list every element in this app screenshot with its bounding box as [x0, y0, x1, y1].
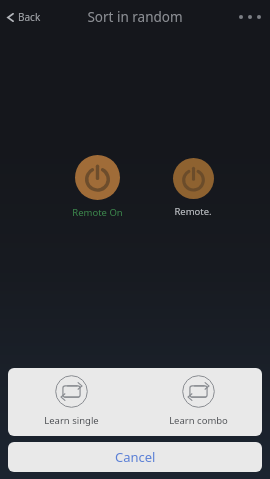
staticText: Remote On: [72, 206, 123, 219]
staticText: Learn combo: [169, 414, 228, 427]
staticText: Back: [18, 10, 41, 24]
staticText: Learn single: [44, 414, 99, 427]
button[interactable]: Cancel: [8, 442, 262, 472]
staticText: Sort in random: [87, 8, 183, 26]
button[interactable]: Learn combo: [135, 368, 262, 427]
button[interactable]: Remote On: [63, 155, 131, 219]
staticText: Cancel: [115, 448, 156, 466]
button[interactable]: Remote.: [159, 158, 227, 218]
button[interactable]: More options: [230, 7, 270, 27]
button[interactable]: Back: [0, 5, 51, 29]
staticText: Remote.: [174, 205, 212, 218]
button[interactable]: Learn single: [8, 368, 135, 427]
